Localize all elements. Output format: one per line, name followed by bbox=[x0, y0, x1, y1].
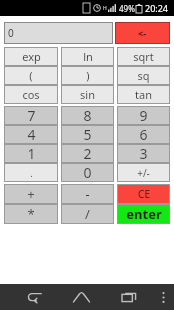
staticText: +/- bbox=[137, 166, 150, 180]
staticText: CE bbox=[138, 187, 150, 201]
staticText: 8 bbox=[83, 106, 92, 125]
staticText: cos bbox=[22, 87, 40, 102]
button[interactable]: * bbox=[4, 204, 58, 224]
staticText: sq bbox=[137, 68, 150, 83]
button[interactable]: enter bbox=[117, 204, 170, 224]
button[interactable]: sin bbox=[61, 85, 114, 104]
button[interactable]: tan bbox=[117, 85, 170, 104]
button[interactable]: / bbox=[61, 204, 114, 224]
staticText: 4 bbox=[27, 125, 36, 144]
button[interactable]: 0 bbox=[61, 163, 114, 182]
button[interactable]: - bbox=[61, 184, 114, 204]
staticText: * bbox=[27, 205, 35, 223]
button[interactable]: 1 bbox=[4, 144, 58, 163]
staticText: 9 bbox=[139, 106, 148, 125]
button[interactable]: 3 bbox=[117, 144, 170, 163]
button[interactable]: Recent apps bbox=[105, 284, 152, 310]
button[interactable]: Backspace bbox=[115, 22, 170, 44]
staticText: 5 bbox=[83, 125, 92, 144]
button[interactable]: exp bbox=[4, 47, 58, 66]
button[interactable]: 4 bbox=[4, 125, 58, 144]
button[interactable]: ( bbox=[4, 66, 58, 85]
button[interactable]: 2 bbox=[61, 144, 114, 163]
button[interactable]: 6 bbox=[117, 125, 170, 144]
staticText: 1 bbox=[27, 144, 36, 163]
staticText: ln bbox=[83, 49, 93, 64]
staticText: 0 bbox=[8, 26, 14, 40]
staticText: 0 bbox=[83, 163, 92, 182]
button[interactable]: + bbox=[4, 184, 58, 204]
button[interactable]: More options bbox=[152, 284, 174, 310]
staticText: + bbox=[27, 185, 35, 203]
button[interactable]: +/- bbox=[117, 163, 170, 182]
staticText: . bbox=[30, 167, 33, 179]
button[interactable]: Back bbox=[10, 284, 58, 310]
button[interactable]: 5 bbox=[61, 125, 114, 144]
staticText: 49% bbox=[119, 3, 135, 14]
staticText: ( bbox=[29, 68, 33, 83]
button[interactable]: sqrt bbox=[117, 47, 170, 66]
button[interactable]: ) bbox=[61, 66, 114, 85]
button[interactable]: cos bbox=[4, 85, 58, 104]
staticText: 7 bbox=[27, 106, 36, 125]
staticText: H bbox=[103, 5, 107, 12]
staticText: sqrt bbox=[133, 49, 154, 64]
button[interactable]: 0 bbox=[4, 22, 113, 44]
staticText: exp bbox=[22, 49, 41, 64]
button[interactable]: 7 bbox=[4, 106, 58, 125]
staticText: 2 bbox=[83, 144, 92, 163]
staticText: sin bbox=[80, 87, 95, 102]
staticText: / bbox=[85, 205, 90, 223]
button[interactable]: ln bbox=[61, 47, 114, 66]
button[interactable]: 8 bbox=[61, 106, 114, 125]
button[interactable]: . bbox=[4, 163, 58, 182]
button[interactable]: CE bbox=[117, 184, 170, 204]
staticText: 20:24 bbox=[145, 2, 169, 14]
button[interactable]: Home bbox=[58, 284, 105, 310]
staticText: ) bbox=[86, 68, 90, 83]
staticText: 3 bbox=[139, 144, 148, 163]
button[interactable]: sq bbox=[117, 66, 170, 85]
staticText: enter bbox=[126, 205, 162, 223]
staticText: <- bbox=[138, 27, 147, 39]
staticText: 6 bbox=[139, 125, 148, 144]
staticText: - bbox=[85, 185, 90, 203]
button[interactable]: 9 bbox=[117, 106, 170, 125]
staticText: tan bbox=[135, 87, 152, 102]
